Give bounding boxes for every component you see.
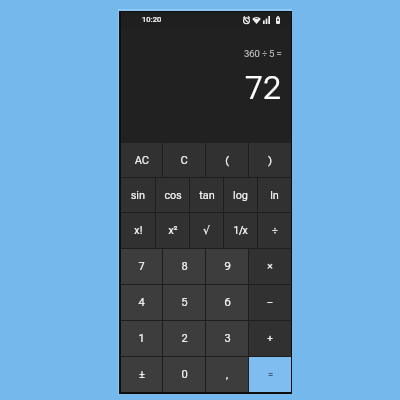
button[interactable]: 1	[121, 321, 162, 356]
staticText: 9	[224, 260, 231, 273]
button[interactable]: x!	[121, 213, 155, 248]
button[interactable]: 6	[206, 285, 248, 320]
button[interactable]: √	[190, 213, 223, 248]
staticText: 360 ÷ 5 =	[244, 48, 282, 59]
staticText: sin	[131, 189, 145, 202]
staticText: x²	[168, 224, 178, 237]
staticText: 5	[181, 296, 188, 309]
other: Alarm set	[243, 16, 250, 24]
staticText: AC	[135, 154, 149, 167]
other: Battery	[276, 16, 280, 24]
button[interactable]: log	[224, 178, 257, 212]
staticText: =	[268, 369, 273, 380]
button[interactable]: cos	[156, 178, 189, 212]
staticText: ln	[270, 189, 279, 202]
other: Wi-Fi	[252, 16, 261, 24]
button[interactable]: ,	[206, 357, 248, 392]
button[interactable]: 1/x	[224, 213, 257, 248]
staticText: 10:20	[142, 15, 162, 24]
staticText: 2	[181, 332, 188, 345]
staticText: √	[203, 224, 210, 237]
button[interactable]: x²	[156, 213, 189, 248]
button[interactable]: =	[249, 357, 291, 392]
staticText: 1	[138, 332, 145, 345]
button[interactable]: −	[249, 285, 291, 320]
staticText: ,	[225, 368, 229, 381]
staticText: x!	[134, 224, 143, 237]
button[interactable]: 4	[121, 285, 162, 320]
staticText: (	[225, 154, 229, 167]
staticText: 7	[138, 260, 145, 273]
other: Signal	[263, 16, 270, 24]
button[interactable]: sin	[121, 178, 155, 212]
staticText: log	[233, 189, 248, 202]
staticText: 1/x	[233, 224, 248, 237]
button[interactable]: ±	[121, 357, 162, 392]
staticText: cos	[164, 189, 182, 202]
staticText: 72	[245, 69, 282, 107]
button[interactable]: 9	[206, 249, 248, 284]
button[interactable]: 5	[163, 285, 205, 320]
button[interactable]: 3	[206, 321, 248, 356]
staticText: 3	[224, 332, 231, 345]
button[interactable]: (	[206, 143, 248, 177]
staticText: 4	[138, 296, 145, 309]
button[interactable]: ln	[258, 178, 291, 212]
button[interactable]: 8	[163, 249, 205, 284]
button[interactable]: ÷	[258, 213, 291, 248]
staticText: ÷	[272, 224, 278, 237]
staticText: C	[180, 154, 188, 167]
staticText: tan	[199, 189, 215, 202]
button[interactable]: ×	[249, 249, 291, 284]
button[interactable]: tan	[190, 178, 223, 212]
button[interactable]: +	[249, 321, 291, 356]
staticText: −	[267, 296, 273, 309]
button[interactable]: 2	[163, 321, 205, 356]
button[interactable]: C	[163, 143, 205, 177]
staticText: +	[267, 332, 273, 345]
staticText: )	[268, 154, 272, 167]
button[interactable]: AC	[121, 143, 162, 177]
staticText: 0	[181, 368, 188, 381]
staticText: 6	[224, 296, 231, 309]
button[interactable]: 0	[163, 357, 205, 392]
staticText: ×	[267, 260, 273, 273]
button[interactable]: )	[249, 143, 291, 177]
staticText: ±	[139, 368, 145, 381]
button[interactable]: 7	[121, 249, 162, 284]
staticText: 8	[181, 260, 188, 273]
